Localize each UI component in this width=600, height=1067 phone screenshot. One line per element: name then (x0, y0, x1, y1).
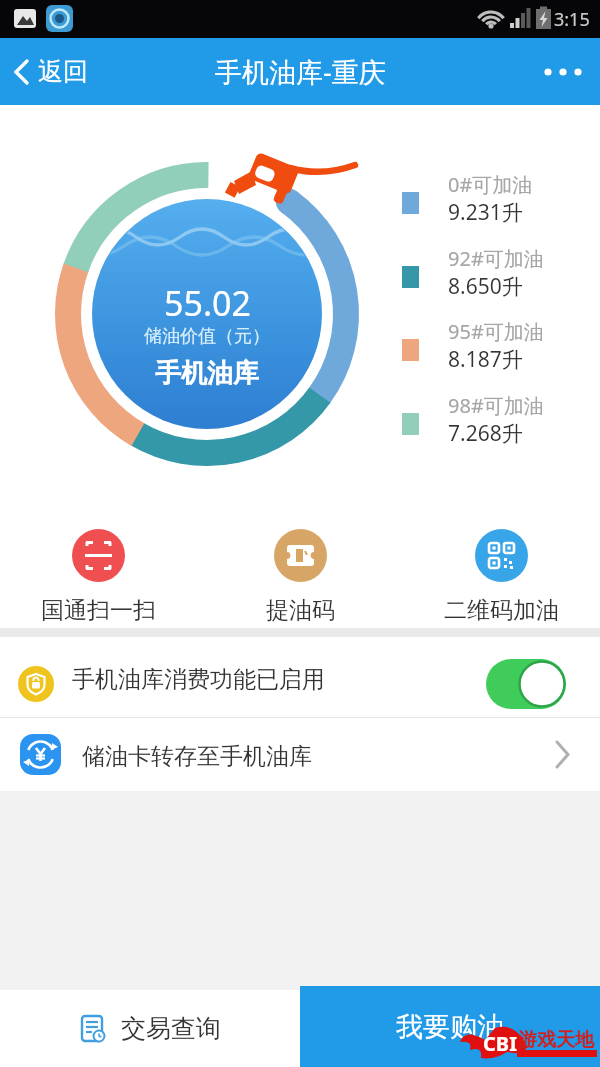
staticText: 交易查询 (121, 1013, 221, 1044)
button[interactable]: 提油码 (220, 529, 380, 625)
staticText: 储油卡转存至手机油库 (82, 742, 312, 771)
staticText: 3:15 (554, 7, 590, 32)
button[interactable]: 交易查询 (0, 990, 300, 1067)
staticText: CBI (483, 1030, 517, 1057)
staticText: 手机油库 (155, 357, 259, 387)
staticText: 55.02 (164, 280, 251, 322)
staticText: 返回 (38, 56, 88, 87)
button[interactable] (486, 659, 566, 709)
staticText: 储油价值（元） (144, 325, 270, 347)
staticText: 二维码加油 (444, 596, 559, 625)
staticText: 手机油库-重庆 (215, 53, 386, 90)
button[interactable]: 我要购油 (300, 986, 600, 1067)
button[interactable]: 二维码加油 (421, 529, 581, 625)
staticText: 游戏天地 (518, 1028, 594, 1052)
staticText: 92#可加油 (448, 245, 544, 272)
staticText: 8.187升 (448, 345, 523, 374)
staticText: 98#可加油 (448, 392, 544, 419)
button[interactable]: 国通扫一扫 (18, 529, 178, 625)
staticText: 9.231升 (448, 198, 523, 227)
staticText: 我要购油 (396, 1010, 504, 1044)
button[interactable] (542, 58, 600, 86)
staticText: 提油码 (266, 596, 335, 625)
staticText: 8.650升 (448, 272, 523, 301)
staticText: 95#可加油 (448, 318, 544, 345)
button[interactable]: 返回 (0, 56, 88, 87)
button[interactable]: 手机油库消费功能已启用 (0, 637, 600, 718)
staticText: 手机油库消费功能已启用 (72, 665, 325, 694)
staticText: 7.268升 (448, 419, 523, 448)
staticText: 0#可加油 (448, 171, 533, 198)
button[interactable]: 储油卡转存至手机油库 (0, 719, 600, 790)
staticText: 国通扫一扫 (41, 596, 156, 625)
